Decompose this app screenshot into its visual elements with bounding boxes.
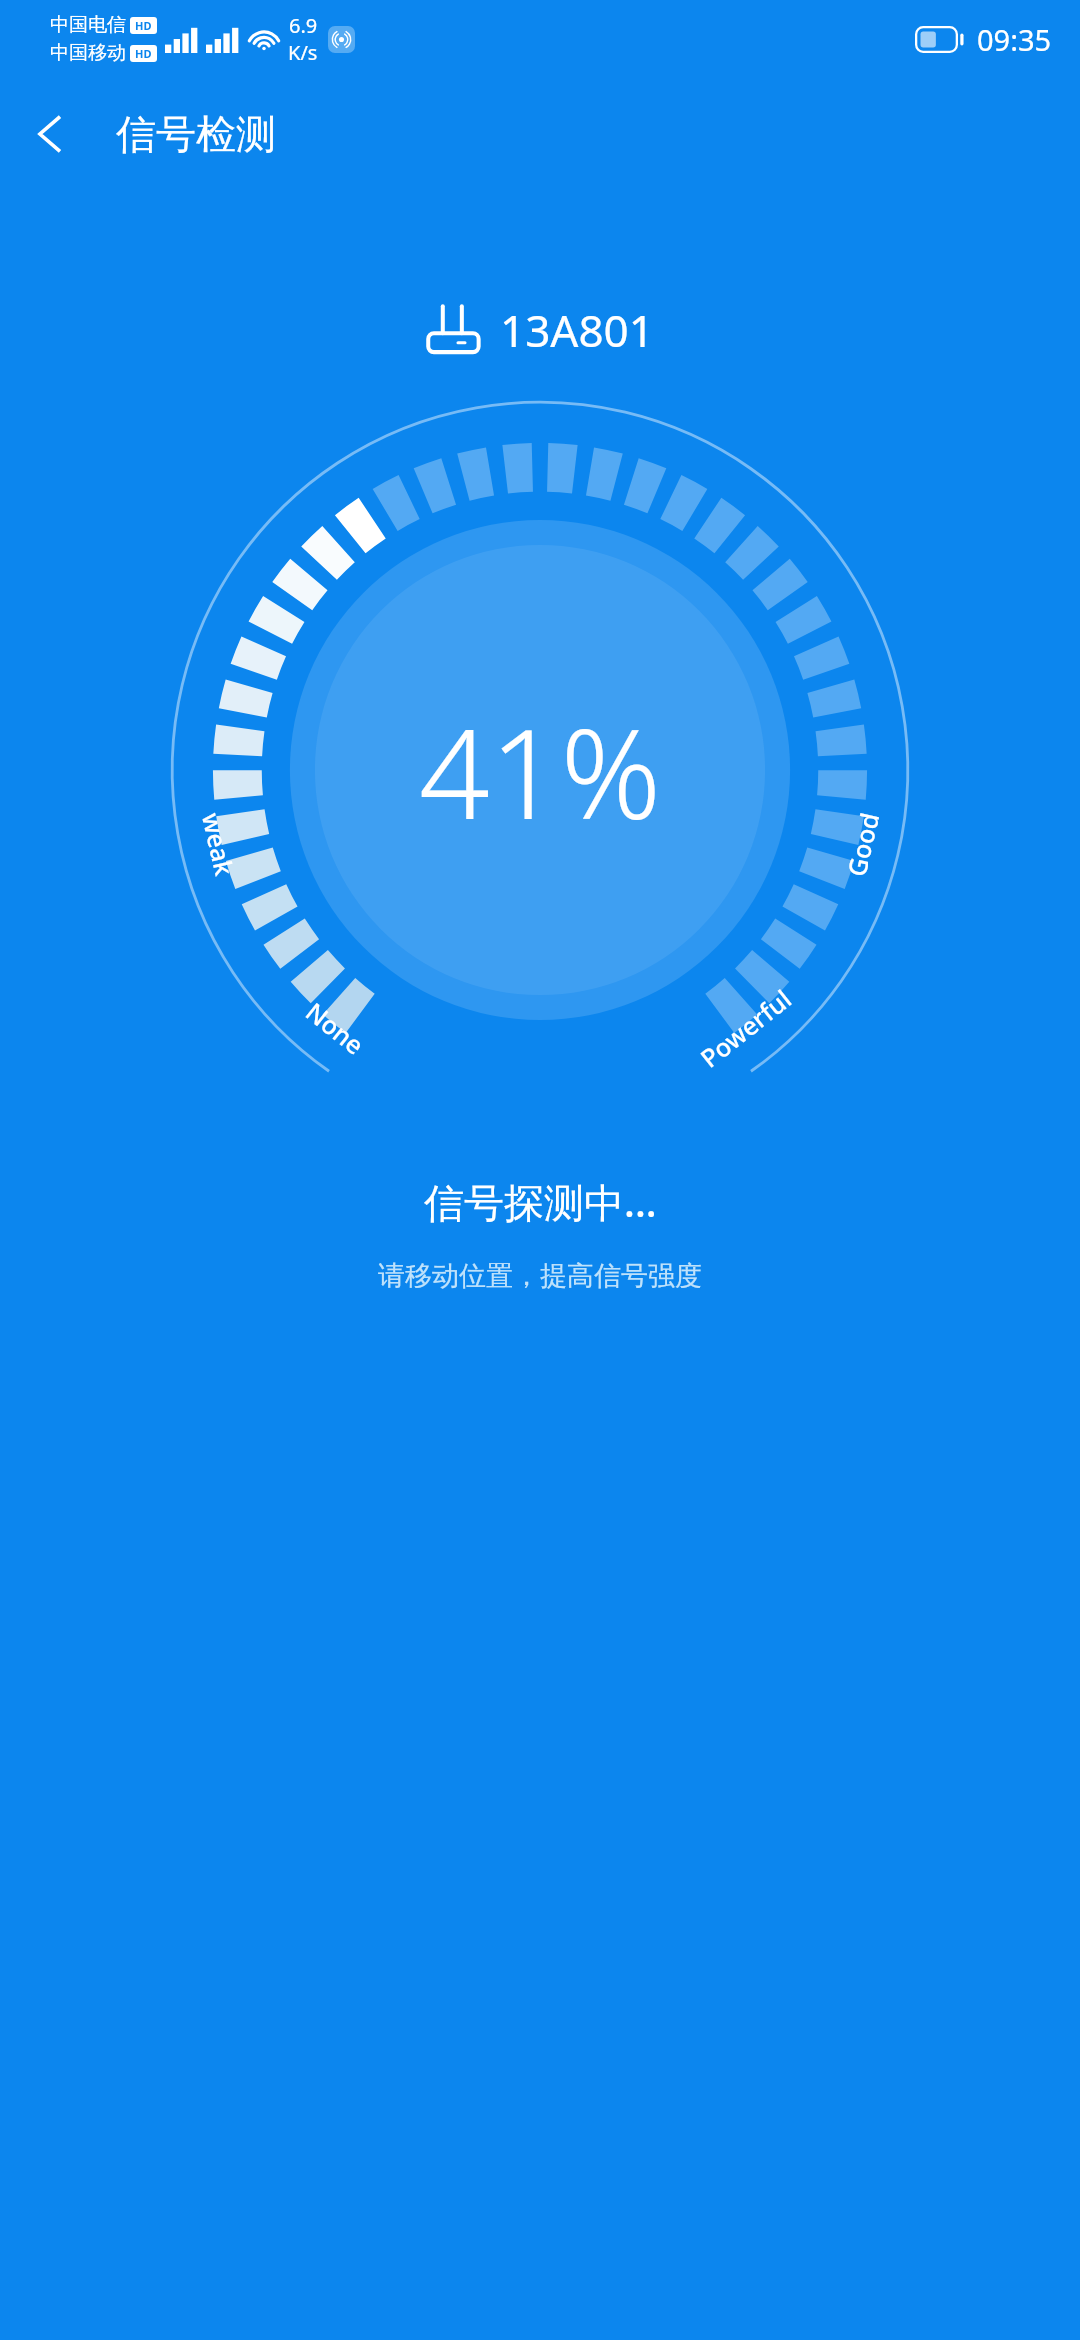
staticText: 中国电信 — [50, 13, 126, 37]
staticText: 信号检测 — [116, 109, 276, 159]
staticText: HD — [135, 46, 152, 61]
button[interactable]: Back — [0, 84, 100, 184]
staticText: 中国移动 — [50, 41, 126, 65]
staticText: Good — [839, 808, 886, 879]
staticText: Powerful — [693, 981, 798, 1075]
staticText: 信号探测中... — [424, 1174, 657, 1229]
staticText: 41% — [419, 686, 662, 855]
staticText: 请移动位置，提高信号强度 — [378, 1259, 702, 1293]
staticText: 6.9 — [289, 12, 318, 39]
staticText: 09:35 — [977, 20, 1052, 59]
staticText: weak — [195, 809, 242, 878]
staticText: 13A801 — [500, 300, 654, 360]
staticText: HD — [135, 18, 152, 33]
staticText: None — [299, 994, 371, 1062]
staticText: K/s — [288, 39, 318, 66]
